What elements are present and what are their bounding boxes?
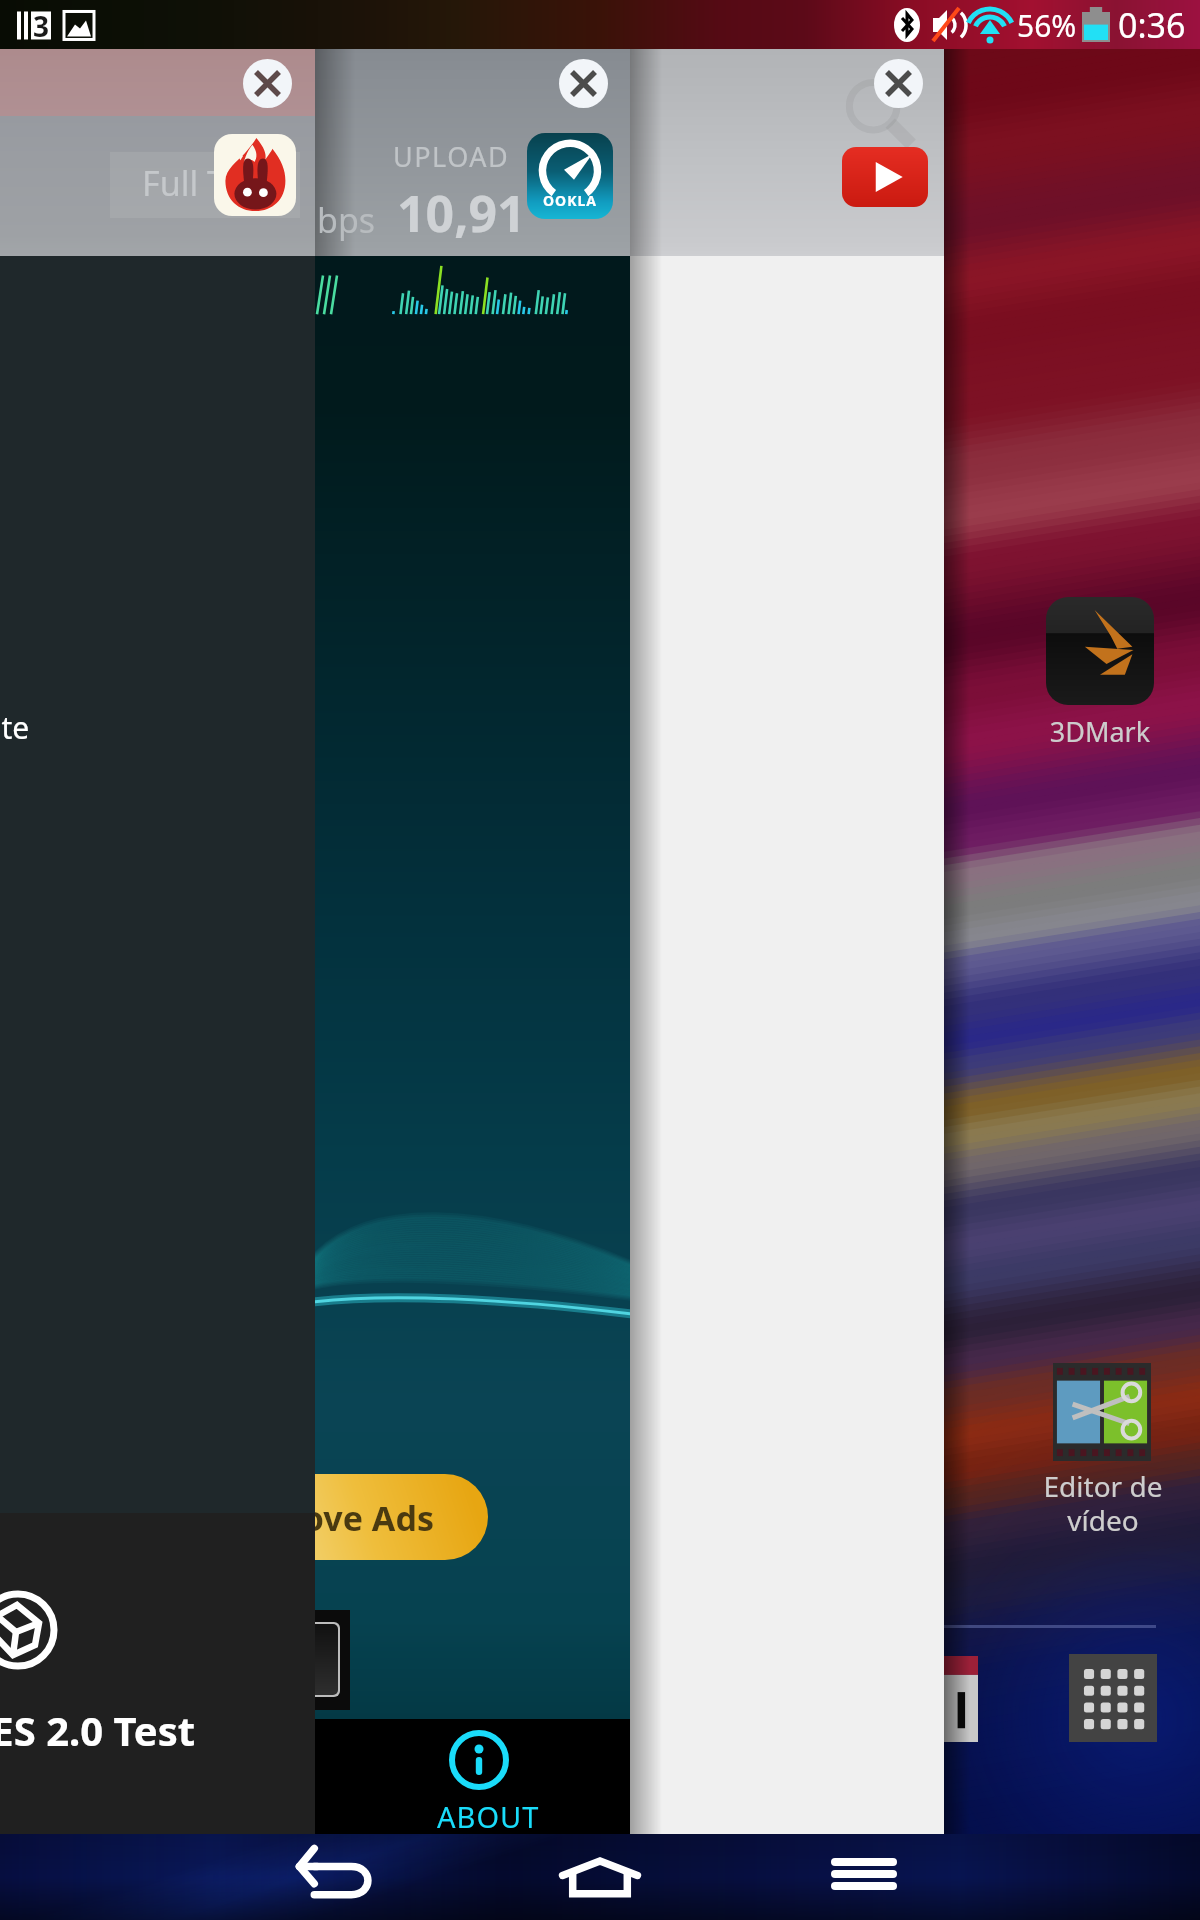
staticText: 56% [1017, 5, 1077, 46]
staticText: ABOUT [437, 1797, 540, 1834]
button[interactable]: Close app [243, 59, 292, 108]
button[interactable]: ABOUT [315, 1719, 630, 1834]
staticText: OOKLA [543, 191, 597, 210]
button[interactable]: Close app [559, 59, 608, 108]
staticText: Remove Ads [315, 1495, 434, 1541]
button[interactable]: Close app [630, 49, 944, 1834]
button[interactable]: Recent apps [778, 1834, 948, 1920]
staticText: 3DMark [1044, 713, 1156, 750]
button[interactable]: Back [250, 1834, 420, 1920]
staticText: 3 [33, 7, 50, 45]
staticText: GPU Remote [0, 707, 30, 748]
button[interactable] [1046, 597, 1154, 705]
button[interactable]: Remove Ads [315, 49, 630, 1834]
staticText: UPLOAD [393, 138, 510, 175]
button[interactable]: Remove Ads [315, 1474, 488, 1560]
staticText: Editor de vídeo [1033, 1467, 1173, 1539]
staticText: 0:36 [1118, 2, 1186, 48]
button[interactable]: Close app [874, 59, 923, 108]
staticText: bps [317, 197, 376, 243]
staticText: Full Test [142, 160, 272, 206]
staticText: 10,91 [397, 179, 526, 247]
button[interactable] [1053, 1363, 1151, 1461]
button[interactable]: Apps [1069, 1654, 1157, 1742]
staticText: GLES 2.0 Test [0, 1703, 196, 1757]
button[interactable]: Home [515, 1834, 685, 1920]
button[interactable]: GPU Remote [0, 49, 315, 1834]
button[interactable] [944, 1656, 978, 1742]
